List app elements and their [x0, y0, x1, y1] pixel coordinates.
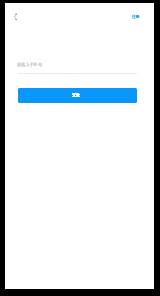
button[interactable]: Back — [9, 7, 22, 23]
staticText: 注册 — [132, 14, 140, 19]
staticText: 请输入手机号 — [17, 62, 43, 67]
staticText: 注册 — [132, 14, 140, 19]
staticText: 请输入手机号 — [17, 62, 43, 67]
staticText: 登录 — [72, 92, 80, 97]
staticText: 注册 — [132, 14, 140, 19]
staticText: 登录 — [72, 92, 80, 97]
button[interactable]: 注册 — [127, 9, 145, 24]
button[interactable]: 登录 — [18, 88, 137, 103]
button[interactable]: 请输入手机号 — [17, 57, 137, 72]
staticText: 登录 — [72, 92, 80, 97]
staticText: 登录 — [72, 92, 80, 97]
